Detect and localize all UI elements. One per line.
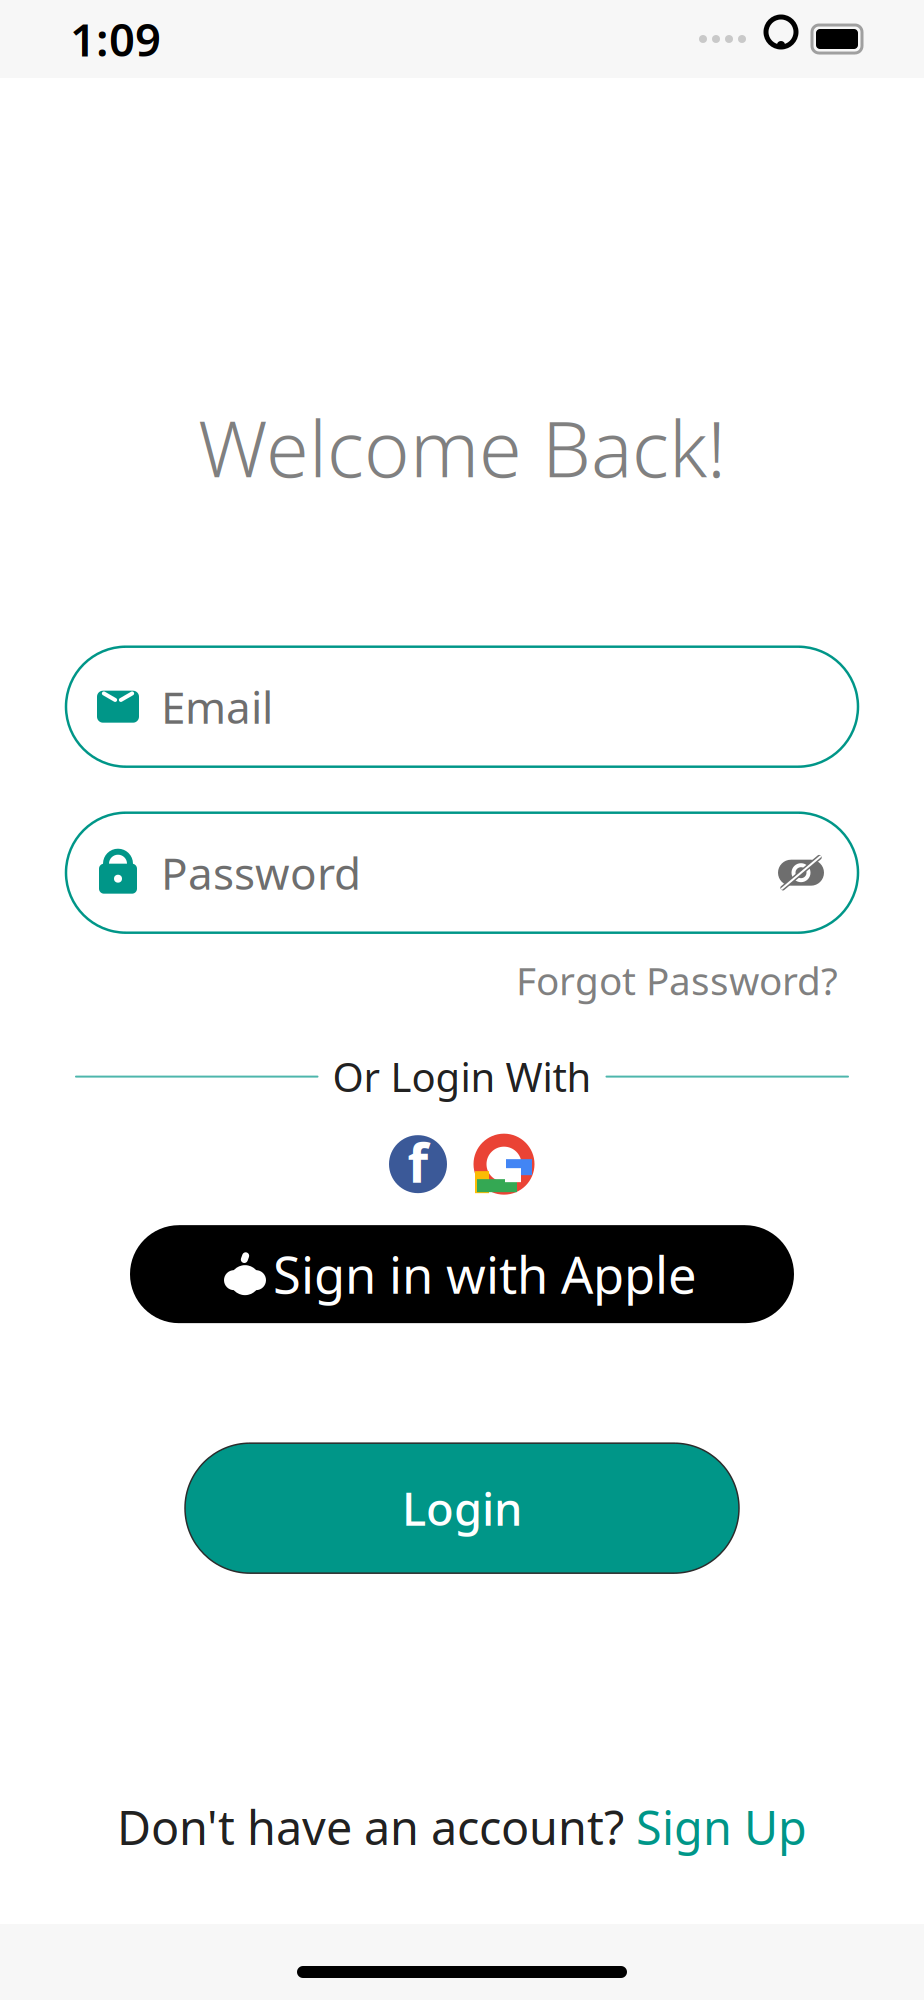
button[interactable]: Don't have an account? <box>117 1796 807 1858</box>
staticText: Welcome Back! <box>198 396 726 499</box>
staticText: 1:09 <box>70 9 161 69</box>
button[interactable]: Forgot Password? <box>516 955 838 1006</box>
staticText: Don't have an account? <box>117 1796 636 1858</box>
button[interactable]: Email <box>66 647 858 767</box>
staticText: Password <box>161 843 361 902</box>
staticText: Login <box>402 1478 522 1538</box>
button[interactable]: Sign in with Apple <box>130 1225 794 1323</box>
staticText: Sign in with Apple <box>273 1240 697 1308</box>
staticText: f <box>407 1127 428 1197</box>
button[interactable]: Password <box>66 813 858 933</box>
staticText: Forgot Password? <box>516 955 838 1006</box>
button[interactable]: Login <box>185 1443 739 1573</box>
staticText: Or Login With <box>332 1050 591 1103</box>
staticText: Sign Up <box>636 1796 807 1858</box>
staticText: Email <box>161 677 273 736</box>
button[interactable]: Sign in with Facebook <box>389 1135 447 1193</box>
button[interactable]: Sign in with Google <box>473 1133 535 1195</box>
